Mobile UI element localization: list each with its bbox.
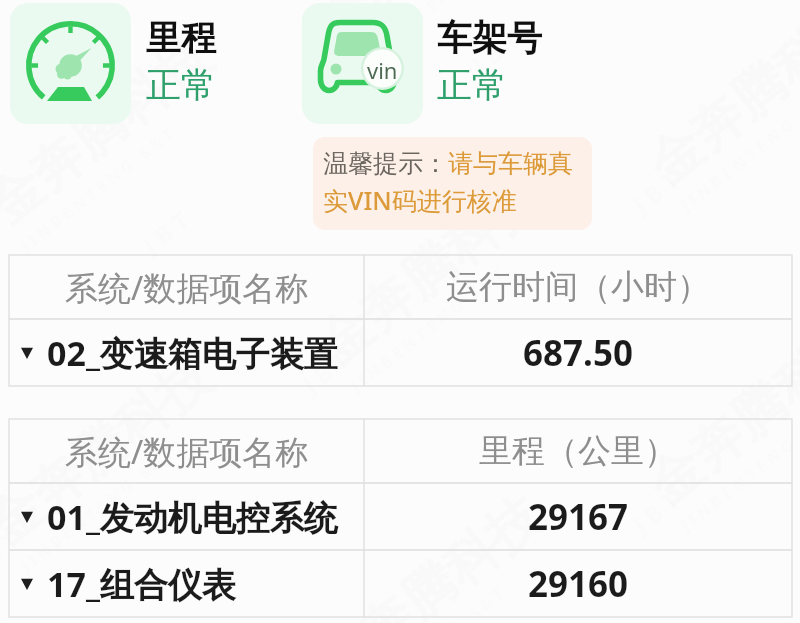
- staticText: 系统/数据项名称: [65, 429, 309, 474]
- staticText: 系统/数据项名称: [65, 265, 309, 310]
- button[interactable]: 01_发动机电控系统: [9, 483, 792, 550]
- staticText: J I N B E N T E N G S & T: [16, 122, 178, 256]
- staticText: J B T: [625, 483, 686, 540]
- staticText: 29167: [528, 493, 629, 541]
- staticText: 17_组合仪表: [47, 561, 236, 607]
- other: 车架号状态图标: [302, 3, 423, 124]
- staticText: 温馨提示：请与车辆真实VIN码进行核准: [323, 148, 585, 217]
- staticText: J I N B E N T E N G S & T: [16, 442, 178, 576]
- staticText: J I N B E N T E N G S & T: [676, 402, 800, 536]
- staticText: 金奔腾科技: [305, 163, 555, 379]
- button[interactable]: 17_组合仪表: [9, 550, 792, 617]
- staticText: J B T: [0, 523, 26, 580]
- button[interactable]: 里程状态图标: [10, 3, 278, 124]
- staticText: 正常: [437, 63, 507, 107]
- staticText: J I N B E N T E N G S & T: [346, 582, 508, 623]
- staticText: 里程: [146, 16, 216, 60]
- staticText: 29160: [528, 560, 629, 608]
- staticText: 车架号: [437, 16, 542, 60]
- staticText: J B T: [135, 203, 196, 260]
- staticText: 金奔腾科技: [0, 343, 225, 559]
- staticText: J B T: [465, 23, 526, 80]
- staticText: J B T: [295, 343, 356, 400]
- staticText: 金奔腾科技: [305, 483, 555, 623]
- staticText: vin: [367, 55, 398, 85]
- staticText: 金奔腾科技: [0, 23, 225, 239]
- staticText: J I N B E N T E N G S & T: [346, 0, 508, 76]
- button[interactable]: 车架号状态图标: [302, 3, 602, 124]
- other: 里程状态图标: [10, 3, 131, 124]
- staticText: 01_发动机电控系统: [47, 494, 338, 540]
- staticText: J I N B E N T E N G S & T: [346, 262, 508, 396]
- staticText: 金奔腾科技: [635, 303, 800, 519]
- staticText: 02_变速箱电子装置: [47, 330, 338, 376]
- staticText: 运行时间（小时）: [446, 266, 710, 308]
- button[interactable]: 02_变速箱电子装置: [9, 319, 792, 386]
- staticText: 687.50: [523, 329, 633, 377]
- staticText: 里程（公里）: [479, 430, 677, 472]
- staticText: 金奔腾科技: [305, 0, 555, 59]
- staticText: 正常: [146, 63, 216, 107]
